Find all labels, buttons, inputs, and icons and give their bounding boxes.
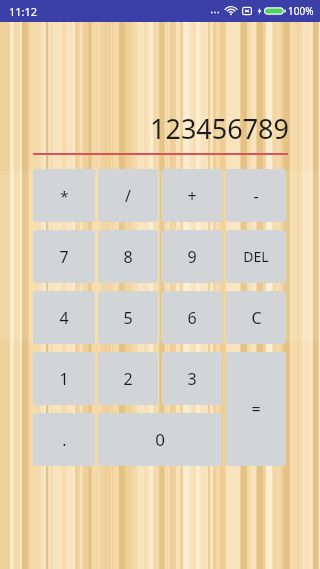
staticText: 9 (187, 246, 197, 268)
staticText: 100% (288, 4, 314, 18)
staticText: 123456789 (150, 110, 289, 147)
staticText: * (60, 186, 69, 206)
staticText: + (187, 185, 197, 207)
staticText: 5 (123, 307, 133, 329)
button[interactable]: * (33, 169, 95, 222)
staticText: 2 (123, 368, 133, 390)
button[interactable]: 5 (98, 291, 158, 344)
button[interactable]: 1 (33, 352, 95, 405)
staticText: C (251, 307, 262, 329)
button[interactable]: / (98, 169, 158, 222)
staticText: 3 (187, 368, 197, 390)
staticText: 7 (59, 246, 69, 268)
staticText: 1 (59, 368, 69, 390)
button[interactable]: 3 (162, 352, 222, 405)
button[interactable]: + (162, 169, 222, 222)
button[interactable]: = (226, 352, 286, 466)
staticText: 11:12 (9, 4, 38, 19)
staticText: . (62, 429, 67, 451)
button[interactable]: C (226, 291, 286, 344)
staticText: - (253, 185, 259, 207)
button[interactable]: 0 (98, 413, 222, 466)
staticText: 4 (59, 307, 69, 329)
button[interactable]: 2 (98, 352, 158, 405)
button[interactable]: 9 (162, 230, 222, 283)
button[interactable]: . (33, 413, 95, 466)
staticText: DEL (243, 247, 269, 266)
staticText: / (125, 185, 131, 207)
button[interactable]: DEL (226, 230, 286, 283)
staticText: 0 (155, 428, 165, 451)
staticText: 8 (123, 246, 133, 268)
staticText: 6 (187, 307, 197, 329)
staticText: = (251, 398, 261, 420)
button[interactable]: 4 (33, 291, 95, 344)
button[interactable]: 6 (162, 291, 222, 344)
button[interactable]: - (226, 169, 286, 222)
button[interactable]: 8 (98, 230, 158, 283)
button[interactable]: 7 (33, 230, 95, 283)
